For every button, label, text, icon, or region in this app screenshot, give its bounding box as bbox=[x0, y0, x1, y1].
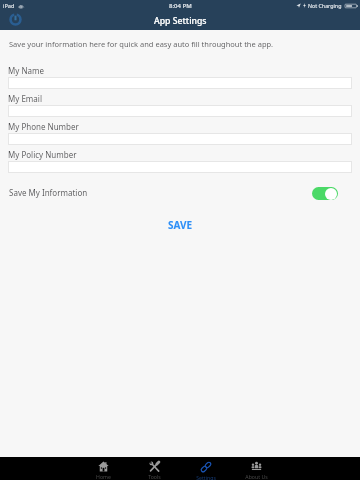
button[interactable] bbox=[8, 105, 352, 117]
staticText: iPad bbox=[3, 2, 15, 10]
button[interactable] bbox=[8, 77, 352, 89]
staticText: About Us bbox=[245, 473, 268, 480]
staticText: Save My Information bbox=[9, 187, 88, 198]
staticText: My Email bbox=[8, 93, 42, 104]
button[interactable] bbox=[8, 133, 352, 145]
staticText: Not Charging bbox=[308, 2, 342, 9]
staticText: Settings bbox=[196, 474, 216, 480]
staticText: SAVE bbox=[168, 218, 193, 232]
button[interactable]: App logo bbox=[9, 13, 22, 26]
button[interactable]: Tools bbox=[129, 457, 180, 480]
button[interactable]: Home bbox=[78, 457, 129, 480]
staticText: Home bbox=[96, 473, 111, 480]
staticText: Tools bbox=[148, 473, 161, 480]
button[interactable]: SAVE bbox=[158, 216, 203, 234]
button[interactable]: Save My Information toggle bbox=[312, 187, 338, 200]
staticText: Save your information here for quick and… bbox=[9, 39, 274, 49]
staticText: App Settings bbox=[154, 15, 207, 27]
staticText: 8:04 PM bbox=[169, 2, 192, 10]
staticText: My Name bbox=[8, 65, 44, 76]
button[interactable]: About Us bbox=[231, 457, 282, 480]
button[interactable] bbox=[8, 161, 352, 173]
staticText: My Policy Number bbox=[8, 149, 77, 160]
button[interactable]: Settings bbox=[180, 457, 231, 480]
staticText: My Phone Number bbox=[8, 121, 79, 132]
